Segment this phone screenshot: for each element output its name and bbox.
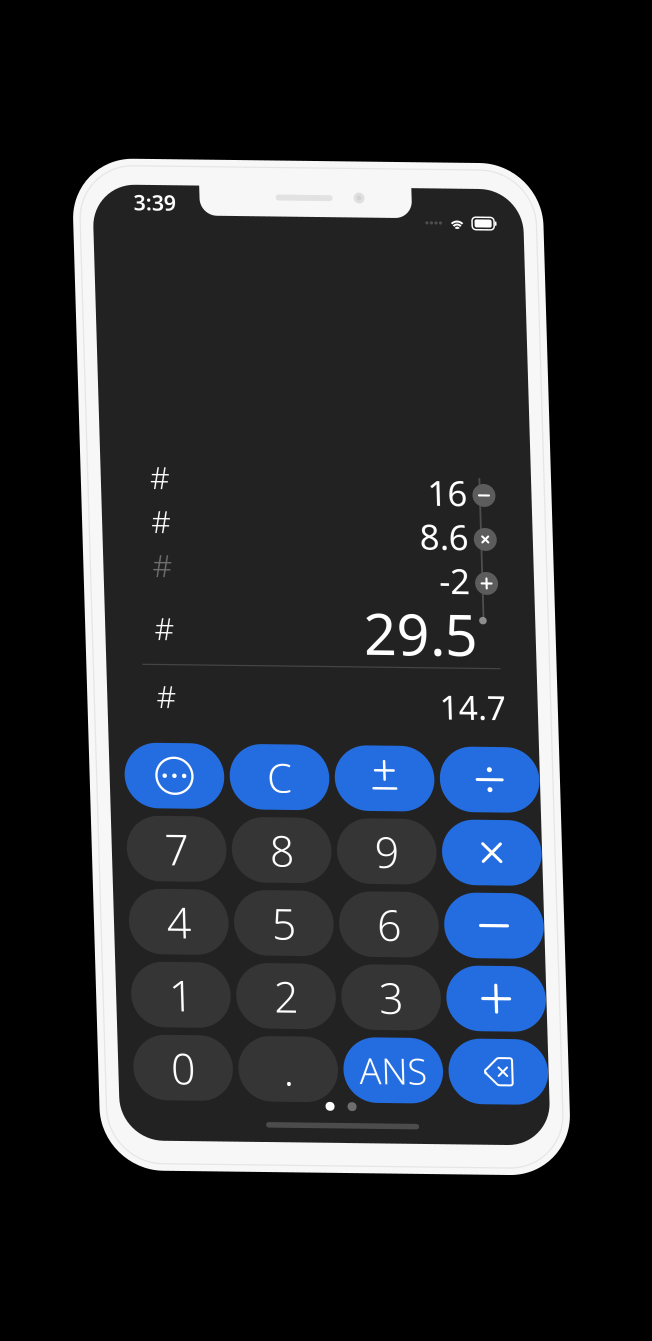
staticText: #: [69, 386, 89, 427]
button[interactable]: Multiply: [350, 657, 449, 722]
button[interactable]: 7: [35, 657, 134, 722]
button[interactable]: 2: [140, 803, 239, 868]
staticText: 2: [178, 807, 202, 864]
staticText: #: [69, 517, 89, 558]
staticText: #: [69, 449, 89, 490]
button[interactable]: 1: [35, 803, 134, 868]
button[interactable]: More options: [35, 584, 134, 649]
button[interactable]: 4: [35, 730, 134, 795]
staticText: .: [185, 880, 195, 937]
staticText: #: [69, 342, 89, 383]
button[interactable]: Add: [350, 803, 449, 868]
button[interactable]: 9: [245, 657, 344, 722]
staticText: 0: [73, 880, 97, 937]
button[interactable]: 6: [245, 730, 344, 795]
button[interactable]: ANS: [245, 876, 344, 941]
button[interactable]: 3: [245, 803, 344, 868]
staticText: 1: [73, 807, 97, 864]
button[interactable]: Subtract: [350, 730, 449, 795]
button[interactable]: .: [140, 876, 239, 941]
staticText: 6: [283, 734, 307, 791]
button[interactable]: 0: [35, 876, 134, 941]
button[interactable]: C: [140, 584, 239, 649]
button[interactable]: 5: [140, 730, 239, 795]
staticText: 8: [178, 661, 202, 718]
button[interactable]: Divide: [350, 584, 449, 649]
staticText: 7: [73, 661, 97, 718]
staticText: 4: [73, 734, 97, 791]
staticText: #: [69, 298, 89, 339]
staticText: 9: [283, 661, 307, 718]
staticText: 5: [178, 734, 202, 791]
button[interactable]: 8: [140, 657, 239, 722]
staticText: 3: [283, 807, 307, 864]
staticText: ANS: [261, 885, 329, 933]
button[interactable]: Delete: [350, 876, 449, 941]
